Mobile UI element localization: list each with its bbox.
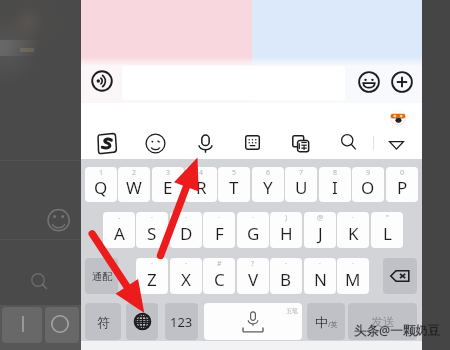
staticText: L [383, 222, 392, 245]
staticText: Q [94, 176, 108, 199]
button[interactable]: · [170, 258, 202, 294]
staticText: · [151, 213, 153, 223]
staticText: G [247, 222, 260, 245]
button[interactable]: 0 [386, 167, 418, 202]
staticText: · [185, 213, 187, 223]
staticText: 通配 [92, 270, 112, 283]
staticText: 5 [232, 168, 237, 178]
button[interactable]: · [170, 212, 202, 248]
staticText: 123 [170, 313, 193, 331]
staticText: P [397, 176, 408, 199]
staticText: 4 [199, 168, 204, 178]
staticText: X [181, 268, 191, 291]
button[interactable]: Backspace [383, 258, 417, 294]
button[interactable]: · [136, 212, 168, 248]
button[interactable]: ) [270, 212, 302, 248]
button[interactable]: Voice [195, 133, 216, 154]
button[interactable]: Space [204, 303, 302, 340]
staticText: 9 [366, 168, 371, 178]
button[interactable]: 中 [307, 303, 345, 340]
button[interactable]: · [136, 258, 168, 294]
staticText: C [214, 268, 225, 291]
button[interactable]: · [237, 212, 269, 248]
button[interactable]: - [103, 212, 135, 248]
button[interactable]: 1 [85, 167, 117, 202]
staticText: M [345, 268, 361, 291]
button[interactable]: 123 [165, 303, 198, 340]
staticText: · [285, 259, 287, 269]
staticText: @ [317, 213, 324, 223]
button[interactable]: @ [304, 212, 336, 248]
staticText: 7 [299, 168, 304, 178]
staticText: · [352, 259, 354, 269]
button[interactable]: Translate [292, 135, 309, 152]
staticText: ) [285, 213, 288, 223]
staticText: U [295, 176, 308, 199]
staticText: 1 [99, 168, 104, 178]
button[interactable]: 7 [285, 167, 317, 202]
button[interactable]: · [270, 258, 302, 294]
button[interactable]: · [337, 212, 369, 248]
staticText: · [352, 213, 354, 223]
staticText: T [229, 176, 239, 199]
button[interactable]: · [203, 212, 235, 248]
button[interactable]: 2 [118, 167, 150, 202]
button[interactable]: Collapse keyboard [389, 138, 404, 153]
button[interactable]: · [337, 258, 369, 294]
staticText: Y [263, 176, 273, 199]
staticText: ? [251, 259, 255, 269]
button[interactable]: Switch language [126, 303, 158, 340]
button[interactable]: # [203, 258, 235, 294]
staticText: " [386, 213, 389, 223]
button[interactable]: ? [237, 258, 269, 294]
staticText: · [218, 213, 220, 223]
staticText: I [332, 176, 338, 199]
staticText: 8 [333, 168, 338, 178]
staticText: W [126, 176, 142, 199]
button[interactable]: Sticker [390, 109, 406, 125]
button[interactable]: Emoticons [145, 133, 166, 154]
staticText: E [163, 176, 173, 199]
button[interactable]: " [371, 212, 403, 248]
button[interactable]: Sogou logo [96, 133, 117, 154]
button[interactable]: 发送 [348, 303, 417, 340]
button[interactable]: 8 [319, 167, 351, 202]
staticText: N [314, 268, 327, 291]
staticText: S [147, 222, 157, 245]
button[interactable]: 4 [185, 167, 217, 202]
staticText: · [151, 259, 153, 269]
button[interactable]: 3 [152, 167, 184, 202]
staticText: · [252, 213, 254, 223]
staticText: V [248, 268, 259, 291]
staticText: 头条@一颗奶豆 [354, 322, 441, 339]
staticText: 符 [97, 314, 110, 330]
button[interactable]: Search [341, 134, 357, 150]
button[interactable]: 9 [352, 167, 384, 202]
staticText: J [318, 222, 323, 245]
staticText: A [114, 222, 125, 245]
button[interactable]: More [391, 71, 413, 93]
button[interactable]: Emoji [358, 71, 380, 93]
staticText: K [348, 222, 359, 245]
staticText: B [280, 268, 292, 291]
button[interactable]: · [304, 258, 336, 294]
button[interactable]: 符 [85, 303, 121, 340]
button[interactable]: 通配 [85, 258, 118, 294]
staticText: /英 [328, 320, 338, 330]
button[interactable]: 6 [252, 167, 284, 202]
staticText: · [319, 259, 321, 269]
staticText: 0 [400, 168, 405, 178]
staticText: 6 [266, 168, 271, 178]
button[interactable]: Voice input [91, 70, 113, 92]
button[interactable]: Keyboard [245, 135, 260, 150]
staticText: H [280, 222, 293, 245]
staticText: 中 [315, 314, 328, 330]
staticText: D [180, 222, 193, 245]
staticText: F [215, 222, 224, 245]
staticText: 五笔 [286, 307, 298, 315]
staticText: 发送 [371, 314, 395, 329]
staticText: Z [147, 268, 157, 291]
button[interactable]: 5 [218, 167, 250, 202]
staticText: # [217, 259, 222, 269]
